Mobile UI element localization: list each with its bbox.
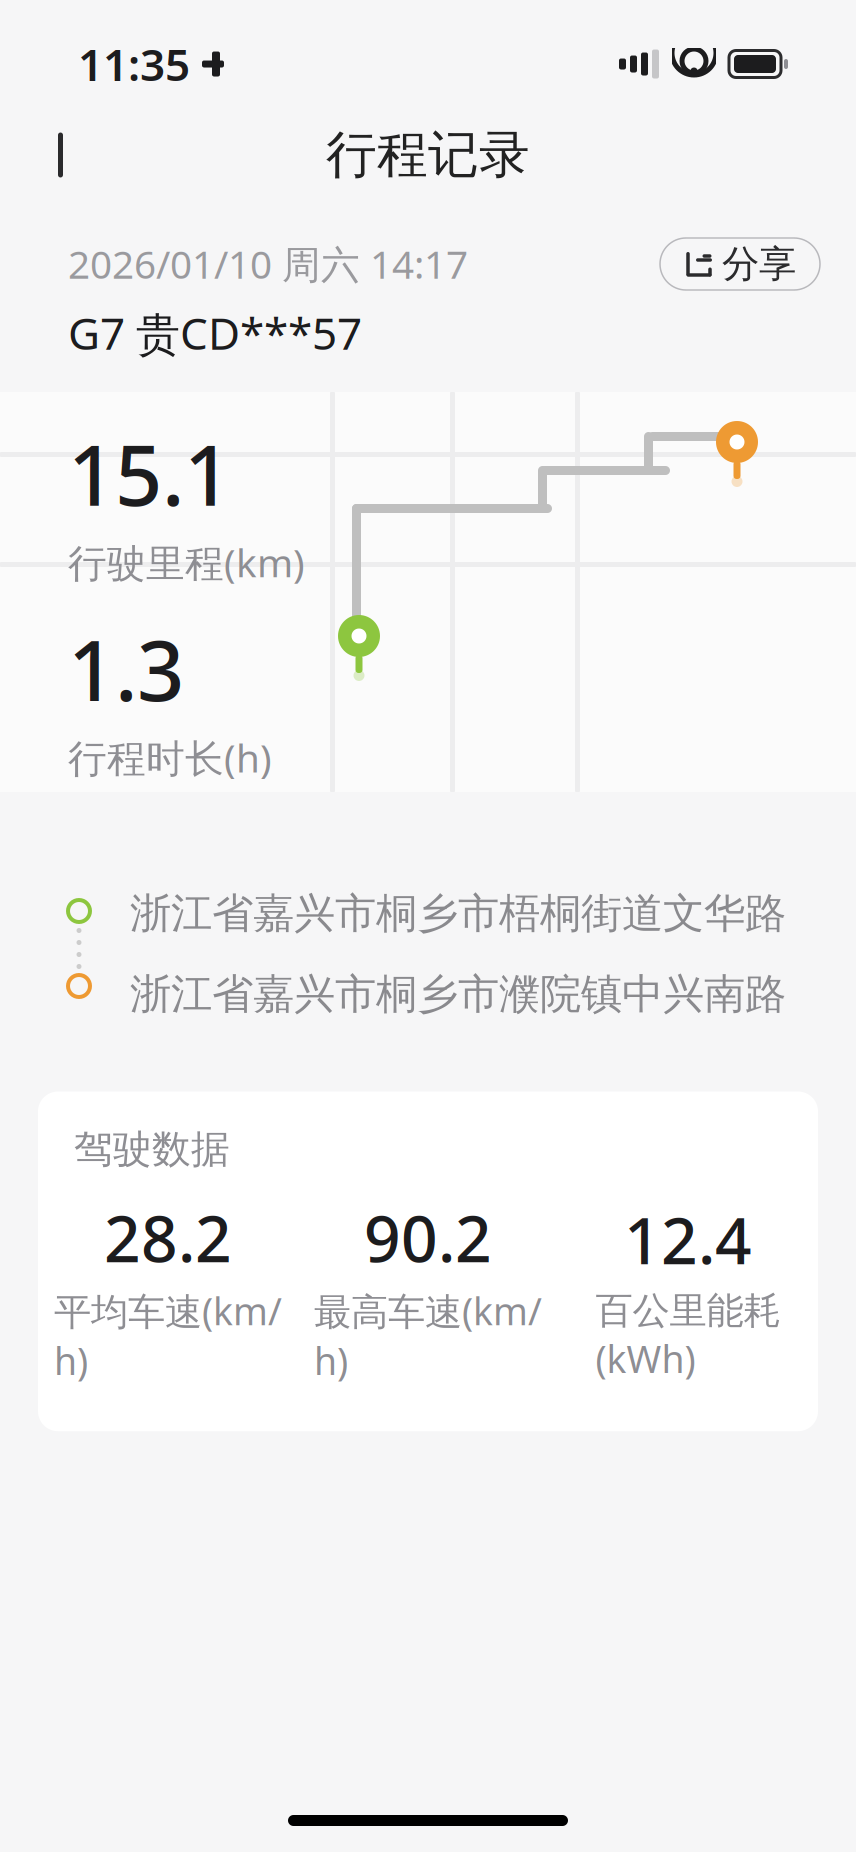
staticText: 12.4 [624, 1197, 752, 1282]
staticText: 驾驶数据 [74, 1125, 230, 1173]
staticText: 11:35 [78, 35, 190, 93]
staticText: 90.2 [364, 1195, 492, 1280]
button[interactable]: 分享 [660, 238, 820, 290]
staticText: 行程记录 [326, 124, 530, 186]
staticText: 浙江省嘉兴市桐乡市梧桐街道文华路 [130, 888, 786, 939]
staticText: 1.3 [68, 614, 184, 724]
staticText: 平均车速(km/h) [54, 1286, 282, 1385]
staticText: 15.1 [68, 419, 231, 529]
staticText: 28.2 [104, 1195, 232, 1280]
staticText: G7 贵CD***57 [68, 303, 362, 362]
staticText: 浙江省嘉兴市桐乡市濮院镇中兴南路 [130, 969, 786, 1020]
staticText: 2026/01/10 周六 14:17 [68, 238, 468, 289]
button[interactable]: 返回 [20, 115, 110, 195]
staticText: 最高车速(km/h) [314, 1286, 542, 1385]
staticText: 百公里能耗(kWh) [595, 1288, 780, 1383]
staticText: 行驶里程(km) [68, 537, 305, 588]
staticText: 分享 [722, 241, 796, 287]
staticText: 行程时长(h) [68, 732, 272, 783]
